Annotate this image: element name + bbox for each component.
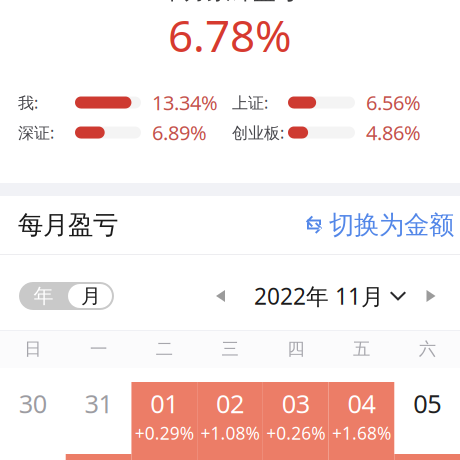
button[interactable]: 年 [19, 282, 68, 310]
staticText: 31 [85, 387, 113, 420]
staticText: 本月累计盈亏 [161, 0, 299, 5]
staticText: 13.34% [152, 89, 218, 116]
button[interactable]: Previous month [200, 281, 244, 311]
staticText: 02 [216, 387, 244, 420]
staticText: 六 [419, 338, 436, 360]
staticText: 4.86% [366, 119, 421, 146]
staticText: +1.68% [332, 421, 391, 444]
button[interactable]: 切换为金额 [304, 203, 454, 246]
staticText: +1.08% [200, 421, 259, 444]
button[interactable]: Next month [416, 281, 446, 311]
staticText: 四 [287, 338, 304, 360]
staticText: 03 [282, 387, 310, 420]
button[interactable]: 2022年 11月 [244, 281, 416, 311]
staticText: 三 [221, 338, 238, 360]
staticText: 二 [156, 338, 173, 360]
staticText: 切换为金额 [329, 209, 454, 240]
staticText: 每月盈亏 [18, 209, 118, 240]
staticText: 05 [413, 387, 441, 420]
button[interactable]: 月 [68, 282, 114, 310]
staticText: 上证: [232, 92, 268, 113]
staticText: 深证: [18, 122, 54, 143]
staticText: +0.29% [135, 421, 194, 444]
staticText: 年 [33, 284, 53, 308]
staticText: 04 [347, 387, 375, 420]
staticText: 日 [24, 338, 41, 360]
staticText: 01 [150, 387, 178, 420]
staticText: 30 [19, 387, 47, 420]
staticText: 我: [18, 92, 38, 113]
staticText: 6.89% [152, 119, 207, 146]
staticText: 五 [353, 338, 370, 360]
staticText: 月 [81, 284, 101, 308]
staticText: 6.56% [366, 89, 421, 116]
staticText: 2022年 11月 [254, 281, 384, 311]
staticText: +0.26% [266, 421, 325, 444]
staticText: 6.78% [168, 6, 292, 64]
staticText: 一 [90, 338, 107, 360]
staticText: 创业板: [232, 122, 284, 143]
